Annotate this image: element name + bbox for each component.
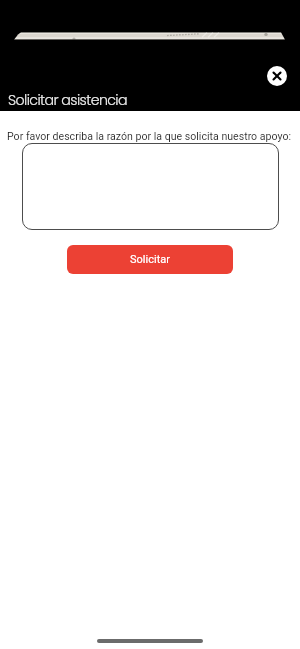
staticText: Solicitar	[130, 253, 170, 266]
button[interactable]: Cerrar	[267, 66, 287, 86]
staticText: Por favor describa la razón por la que s…	[7, 130, 292, 142]
button[interactable]: Solicitar	[67, 245, 233, 274]
staticText: Solicitar asistencia	[8, 90, 127, 110]
button[interactable]	[22, 143, 279, 230]
